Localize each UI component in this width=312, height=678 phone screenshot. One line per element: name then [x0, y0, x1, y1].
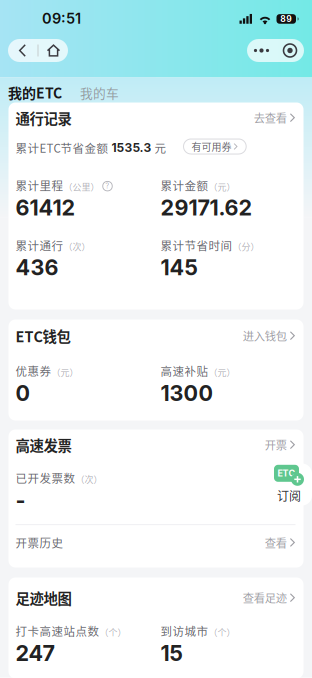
staticText: 累计通行 [15, 237, 63, 253]
staticText: （公里） [63, 180, 99, 193]
staticText: 61412 [15, 195, 75, 221]
staticText: 足迹地图 [15, 587, 71, 608]
button[interactable]: Home [38, 39, 68, 62]
button[interactable]: ETC [266, 463, 312, 505]
staticText: 订阅 [277, 487, 301, 504]
staticText: 优惠券 [15, 362, 51, 379]
staticText: 通行记录 [15, 107, 71, 128]
staticText: （个） [208, 625, 235, 638]
staticText: 0 [15, 380, 30, 406]
staticText: 我的车 [80, 84, 119, 102]
staticText: 高速发票 [15, 434, 71, 455]
staticText: 累计节省时间 [160, 237, 232, 253]
staticText: 累计里程 [15, 177, 63, 194]
staticText: 到访城市 [160, 622, 208, 639]
staticText: （元） [208, 180, 235, 193]
staticText: 累计金额 [160, 177, 208, 194]
staticText: 145 [160, 254, 197, 280]
staticText: （个） [99, 625, 126, 638]
staticText: ? [105, 182, 109, 190]
staticText: 已开发票数 [15, 469, 75, 486]
staticText: （元） [51, 365, 78, 378]
button[interactable]: 有可用券 [183, 141, 246, 156]
staticText: （分） [232, 240, 259, 253]
staticText: 进入钱包 [243, 327, 287, 344]
staticText: 有可用券 [191, 139, 231, 154]
staticText: ETC钱包 [15, 325, 70, 346]
staticText: 436 [15, 254, 58, 280]
staticText: - [15, 487, 25, 513]
staticText: 查看足迹 [243, 589, 287, 606]
button[interactable]: More [247, 39, 276, 62]
button[interactable]: Close [276, 39, 304, 62]
staticText: 1300 [160, 380, 213, 406]
staticText: （元） [208, 365, 235, 378]
staticText: 开票 [265, 436, 287, 453]
staticText: 查看 [265, 534, 287, 551]
staticText: 89 [280, 14, 292, 24]
staticText: 09:51 [42, 10, 81, 27]
staticText: 开票历史 [15, 534, 63, 551]
staticText: 去查看 [254, 109, 287, 126]
staticText: ETC [277, 468, 295, 479]
button[interactable]: 进入钱包 [243, 330, 295, 346]
staticText: 29171.62 [160, 195, 252, 221]
button[interactable]: 我的ETC [8, 82, 62, 102]
button[interactable]: 我的车 [80, 84, 119, 102]
staticText: 元 [151, 139, 166, 156]
staticText: 247 [15, 640, 54, 666]
button[interactable]: 去查看 [254, 112, 295, 128]
staticText: 15 [160, 640, 182, 666]
button[interactable]: 查看足迹 [243, 592, 295, 608]
staticText: 1535.3 [111, 140, 151, 155]
staticText: （次） [75, 472, 102, 485]
staticText: 打卡高速站点数 [15, 622, 99, 639]
staticText: （次） [63, 240, 90, 253]
staticText: 我的ETC [8, 82, 62, 102]
button[interactable]: Back [7, 39, 37, 62]
button[interactable]: 开票 [265, 439, 295, 455]
staticText: 累计ETC节省金额 [15, 139, 111, 156]
button[interactable]: 开票历史 [15, 534, 295, 551]
staticText: 高速补贴 [160, 362, 208, 379]
